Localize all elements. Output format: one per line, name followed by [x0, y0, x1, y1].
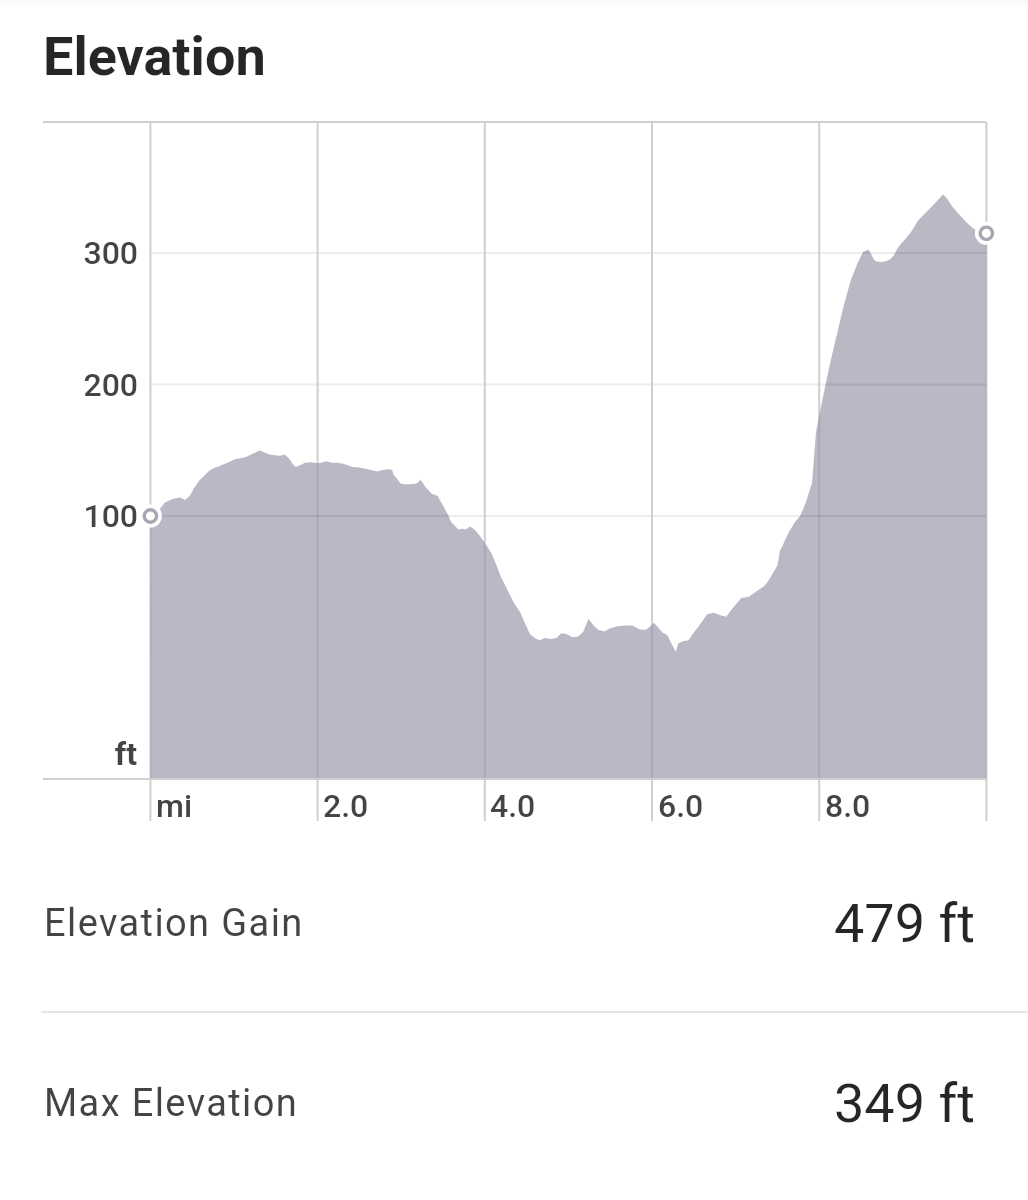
staticText: 8.0: [825, 787, 871, 825]
staticText: 6.0: [658, 787, 704, 825]
staticText: Elevation Gain: [44, 901, 304, 946]
staticText: mi: [156, 787, 193, 825]
other: Elevation profile chart: [0, 110, 1028, 830]
staticText: ft: [0, 735, 137, 773]
staticText: 479 ft: [834, 892, 975, 955]
staticText: Max Elevation: [44, 1081, 299, 1126]
staticText: 300: [0, 234, 138, 272]
staticText: 349 ft: [834, 1072, 975, 1135]
staticText: Elevation: [43, 25, 266, 88]
staticText: 200: [0, 366, 138, 404]
staticText: 100: [0, 497, 138, 535]
staticText: 4.0: [490, 787, 536, 825]
button[interactable]: Elevation Gain: [0, 850, 1028, 996]
staticText: 2.0: [323, 787, 369, 825]
button[interactable]: Max Elevation: [0, 1030, 1028, 1176]
